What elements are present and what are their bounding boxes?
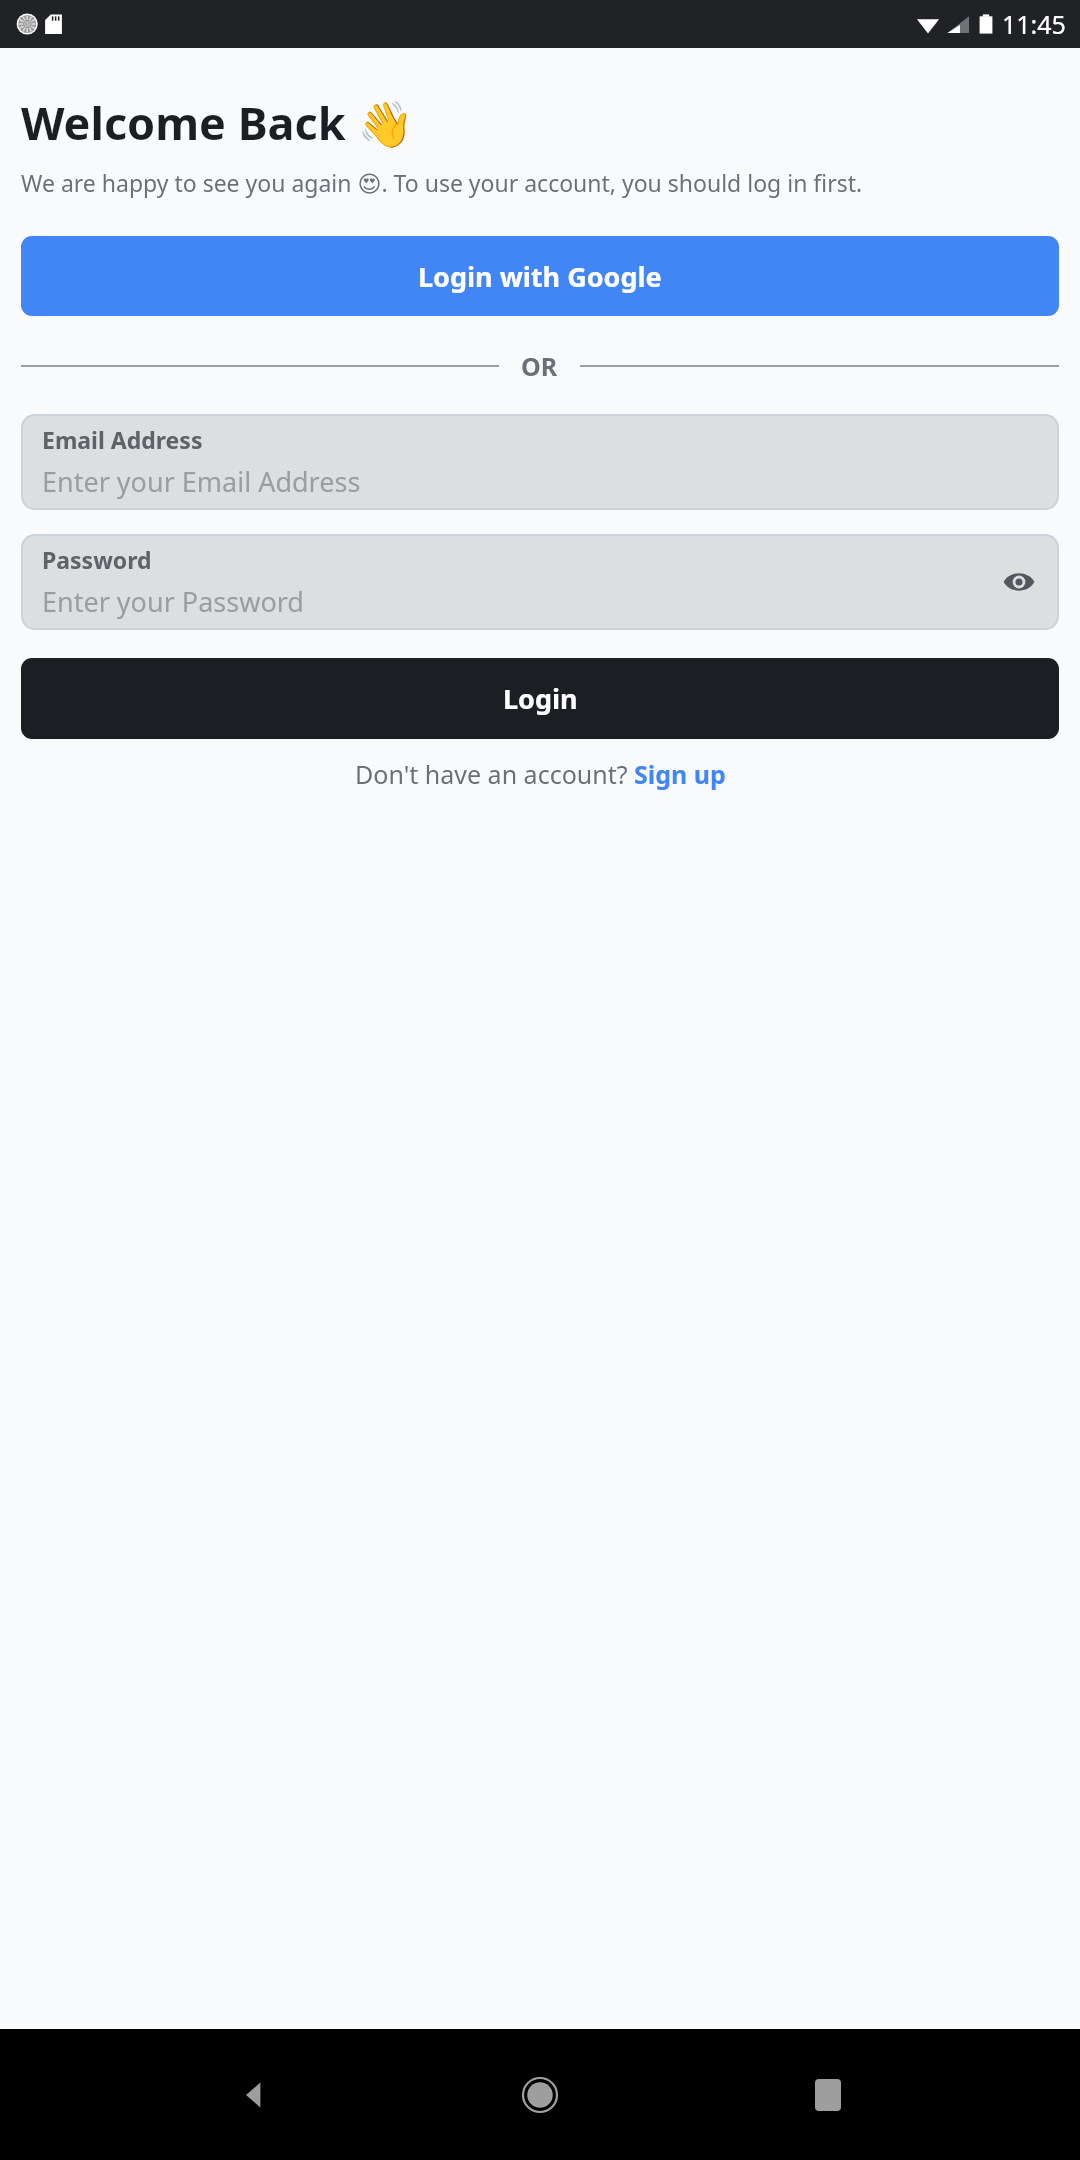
- staticText: OR: [521, 349, 558, 383]
- staticText: Enter your Email Address: [42, 463, 361, 500]
- button[interactable]: Email Address: [21, 414, 1059, 510]
- button[interactable]: Show password: [1001, 564, 1037, 600]
- staticText: Don't have an account? Sign up: [355, 757, 726, 791]
- button[interactable]: Login: [21, 658, 1059, 739]
- staticText: 11:45: [1002, 7, 1066, 41]
- staticText: Password: [42, 544, 152, 575]
- button[interactable]: Password: [21, 534, 1059, 630]
- staticText: Welcome Back 👋: [21, 92, 414, 153]
- button[interactable]: Login with Google: [21, 236, 1059, 316]
- button[interactable]: Recent apps: [792, 2059, 864, 2131]
- button[interactable]: Home: [504, 2059, 576, 2131]
- staticText: Login: [503, 680, 578, 717]
- staticText: We are happy to see you again 😍. To use …: [21, 167, 863, 198]
- button[interactable]: Don't have an account? Sign up: [355, 757, 726, 791]
- staticText: Enter your Password: [42, 583, 304, 620]
- staticText: Email Address: [42, 424, 203, 455]
- button[interactable]: Back: [216, 2059, 288, 2131]
- staticText: Login with Google: [418, 258, 662, 295]
